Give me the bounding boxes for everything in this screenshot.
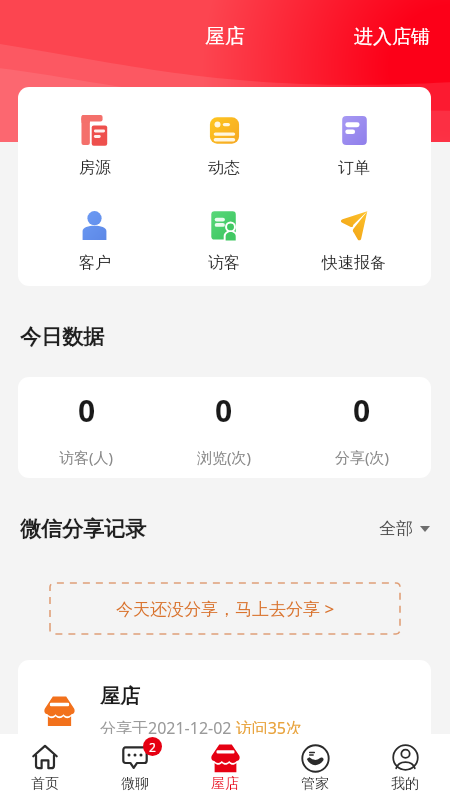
button[interactable]: 客户 bbox=[30, 210, 159, 273]
other: 屋店 bbox=[211, 744, 240, 773]
button[interactable]: 今天还没分享，马上去分享 > bbox=[50, 583, 400, 634]
staticText: 今日数据 bbox=[20, 324, 104, 350]
staticText: 0 bbox=[215, 390, 233, 431]
staticText: 进入店铺 bbox=[354, 25, 430, 49]
other: 微聊 bbox=[122, 744, 148, 770]
staticText: 订单 bbox=[338, 158, 370, 178]
button[interactable]: 微聊 bbox=[90, 734, 180, 800]
button[interactable]: 屋店 bbox=[180, 734, 270, 800]
staticText: 客户 bbox=[79, 253, 111, 273]
staticText: 浏览(次) bbox=[197, 447, 252, 467]
staticText: 快速报备 bbox=[322, 253, 386, 273]
staticText: 微聊 bbox=[121, 775, 149, 793]
staticText: 管家 bbox=[301, 775, 329, 793]
staticText: 微信分享记录 bbox=[20, 516, 146, 542]
staticText: 访客 bbox=[208, 253, 240, 273]
button[interactable]: 订单 bbox=[289, 115, 419, 178]
staticText: 2 bbox=[149, 739, 156, 755]
staticText: 分享于2021-12-02 访问35次 bbox=[100, 717, 302, 739]
staticText: 0 bbox=[353, 390, 371, 431]
button[interactable]: 房源 bbox=[30, 115, 159, 178]
button[interactable]: 首页 bbox=[0, 734, 90, 800]
button[interactable]: 管家 bbox=[270, 734, 360, 800]
other: 首页 bbox=[32, 744, 58, 770]
staticText: 首页 bbox=[31, 775, 59, 793]
staticText: 屋店 bbox=[211, 775, 239, 793]
staticText: 我的 bbox=[391, 775, 419, 793]
other: 屋店 bbox=[44, 696, 75, 727]
button[interactable]: 动态 bbox=[159, 115, 289, 178]
button[interactable]: 屋店 bbox=[18, 660, 431, 760]
staticText: 屋店 bbox=[100, 684, 140, 709]
staticText: 动态 bbox=[208, 158, 240, 178]
other: 管家 bbox=[301, 744, 330, 773]
button[interactable]: 访客 bbox=[159, 210, 289, 273]
staticText: 0 bbox=[78, 390, 96, 431]
button[interactable]: 全部 bbox=[375, 514, 434, 543]
other: 我的 bbox=[392, 744, 419, 771]
staticText: 分享(次) bbox=[335, 447, 390, 467]
staticText: 今天还没分享，马上去分享 > bbox=[116, 597, 335, 620]
staticText: 访客(人) bbox=[59, 447, 114, 467]
button[interactable]: 进入店铺 bbox=[340, 17, 450, 57]
button[interactable]: 快速报备 bbox=[289, 210, 419, 273]
staticText: 屋店 bbox=[205, 24, 245, 49]
staticText: 全部 bbox=[379, 518, 413, 539]
button[interactable]: 我的 bbox=[360, 734, 450, 800]
staticText: 房源 bbox=[79, 158, 111, 178]
